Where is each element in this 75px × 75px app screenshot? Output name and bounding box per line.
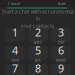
staticText: 9 bbox=[58, 61, 64, 75]
button[interactable]: 7 bbox=[5, 64, 25, 75]
button[interactable]: Cancel bbox=[8, 0, 20, 7]
button[interactable]: 4 bbox=[5, 46, 25, 60]
staticText: ABC bbox=[33, 39, 42, 45]
button[interactable]: 3 bbox=[51, 28, 71, 42]
staticText: 5 bbox=[35, 43, 41, 57]
staticText: 8 bbox=[35, 61, 41, 75]
staticText bbox=[14, 39, 15, 45]
staticText: Cancel bbox=[8, 1, 20, 6]
staticText: JKL bbox=[35, 57, 41, 63]
staticText: DEF bbox=[57, 39, 64, 45]
button[interactable]: 9 bbox=[51, 64, 71, 75]
staticText: 2 bbox=[35, 25, 41, 39]
button[interactable]: Add bbox=[57, 0, 66, 7]
staticText: 6 bbox=[58, 43, 64, 57]
button[interactable]: 6 bbox=[51, 46, 71, 60]
staticText: 1 bbox=[12, 25, 18, 39]
button[interactable]: 5 bbox=[28, 46, 48, 60]
staticText: 3 bbox=[58, 25, 64, 39]
button[interactable]: 8 bbox=[28, 64, 48, 75]
staticText: MNO bbox=[56, 57, 66, 63]
staticText: Start a chat with accurate real in your … bbox=[1, 8, 73, 29]
button[interactable]: 1 bbox=[5, 28, 25, 42]
staticText: Add bbox=[58, 1, 65, 6]
button[interactable]: 2 bbox=[28, 28, 48, 42]
staticText: 7 bbox=[12, 61, 18, 75]
staticText: GHI bbox=[11, 57, 18, 63]
staticText: 4 bbox=[12, 43, 18, 57]
